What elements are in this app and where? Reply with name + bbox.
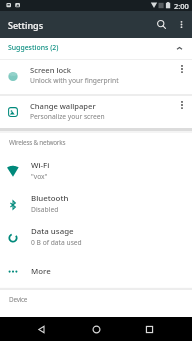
staticText: Data usage (31, 226, 74, 237)
button[interactable]: Bluetooth (0, 188, 192, 221)
staticText: 2:00 (174, 1, 189, 11)
button[interactable]: Search (150, 11, 172, 38)
button[interactable]: Collapse suggestions (176, 45, 183, 52)
button[interactable]: Suggestions (2) (0, 38, 192, 59)
button[interactable]: Home (84, 317, 109, 341)
staticText: Change wallpaper (30, 101, 96, 111)
staticText: Suggestions (2) (8, 43, 59, 52)
button[interactable]: Change wallpaper (0, 96, 192, 128)
button[interactable]: Data usage (0, 221, 192, 254)
button[interactable]: More options (172, 60, 192, 92)
staticText: Disabled (31, 205, 59, 214)
staticText: Unlock with your fingerprint (30, 76, 119, 85)
button[interactable]: More (0, 254, 192, 287)
staticText: Personalize your screen (30, 112, 105, 121)
staticText: Wi-Fi (31, 160, 50, 171)
staticText: More (31, 266, 51, 277)
button[interactable]: Wi-Fi (0, 155, 192, 188)
button[interactable]: More options (172, 96, 192, 128)
staticText: Device (9, 295, 28, 304)
staticText: Bluetooth (31, 193, 69, 204)
staticText: 0 B of data used (31, 238, 82, 247)
staticText: "vox" (31, 172, 48, 181)
button[interactable]: Back (29, 317, 54, 341)
button[interactable]: Screen lock (0, 60, 192, 92)
button[interactable]: Recent apps (137, 317, 162, 341)
button[interactable]: More options (172, 11, 190, 38)
staticText: Wireless & networks (9, 138, 66, 147)
staticText: Settings (8, 19, 44, 31)
staticText: Screen lock (30, 65, 72, 75)
